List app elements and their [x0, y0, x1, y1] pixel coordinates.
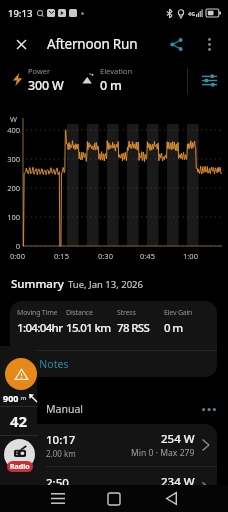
button[interactable]: 10:17 — [0, 424, 217, 466]
staticText: m — [19, 394, 27, 402]
staticText: Elevation — [100, 66, 133, 76]
staticText: 400 — [7, 125, 20, 135]
staticText: Add Notes — [17, 357, 69, 371]
staticText: Radio — [10, 462, 30, 472]
button[interactable]: Speed — [0, 407, 38, 435]
button[interactable]: More options — [196, 31, 222, 57]
button[interactable]: Hazard warning — [5, 358, 37, 390]
staticText: 0 m — [164, 320, 183, 336]
staticText: 0:15 — [54, 251, 69, 261]
staticText: 254 W — [161, 431, 195, 447]
staticText: Afternoon Run — [47, 35, 138, 53]
staticText: Stress — [117, 308, 136, 318]
staticText: 300 — [7, 154, 20, 164]
button[interactable]: Close — [6, 29, 36, 59]
staticText: 0 m — [100, 77, 122, 94]
button[interactable]: Radio — [4, 439, 35, 470]
button[interactable]: Add Notes — [10, 351, 217, 377]
staticText: 234 W — [161, 474, 195, 490]
staticText: 10:17 — [46, 432, 76, 448]
staticText: Distance — [66, 308, 93, 318]
button[interactable]: Chart settings — [198, 69, 220, 91]
staticText: 900 — [3, 392, 19, 404]
staticText: 0:30 — [98, 251, 113, 261]
staticText: 200 — [7, 183, 20, 193]
staticText: 100 — [7, 212, 20, 222]
staticText: 1:00 — [183, 251, 198, 261]
staticText: W — [10, 114, 17, 124]
button[interactable]: Recent apps — [43, 485, 72, 512]
staticText: Power — [28, 66, 51, 76]
staticText: 0:45 — [140, 251, 155, 261]
staticText: 19:13 — [8, 7, 33, 20]
staticText: Elev Gain — [164, 308, 193, 318]
staticText: 4G — [188, 10, 196, 17]
button[interactable]: Lap options — [200, 400, 218, 418]
button[interactable]: Back — [157, 485, 186, 512]
staticText: 42 — [10, 411, 28, 431]
button[interactable]: 2:50 — [0, 467, 217, 509]
button[interactable]: Home — [99, 485, 128, 512]
staticText: Min 0 · Max 260 — [131, 490, 195, 502]
staticText: 0 — [15, 241, 20, 251]
staticText: Min 0 · Max 279 — [131, 447, 195, 459]
staticText: 2.00 km — [46, 448, 76, 459]
staticText: 300 W — [28, 77, 64, 94]
staticText: 2:50 — [46, 475, 69, 491]
staticText: 78 RSS — [117, 320, 150, 336]
staticText: Summary — [11, 276, 64, 292]
staticText: 0.60 km — [46, 491, 76, 502]
staticText: Tue, Jan 13, 2026 — [68, 278, 143, 291]
staticText: Manual — [46, 402, 83, 416]
staticText: 15.01 km — [66, 320, 111, 336]
staticText: 0:00 — [10, 251, 25, 261]
button[interactable]: Share — [161, 29, 191, 59]
staticText: 1:04:04hr — [17, 320, 63, 336]
staticText: Moving Time — [17, 308, 58, 318]
